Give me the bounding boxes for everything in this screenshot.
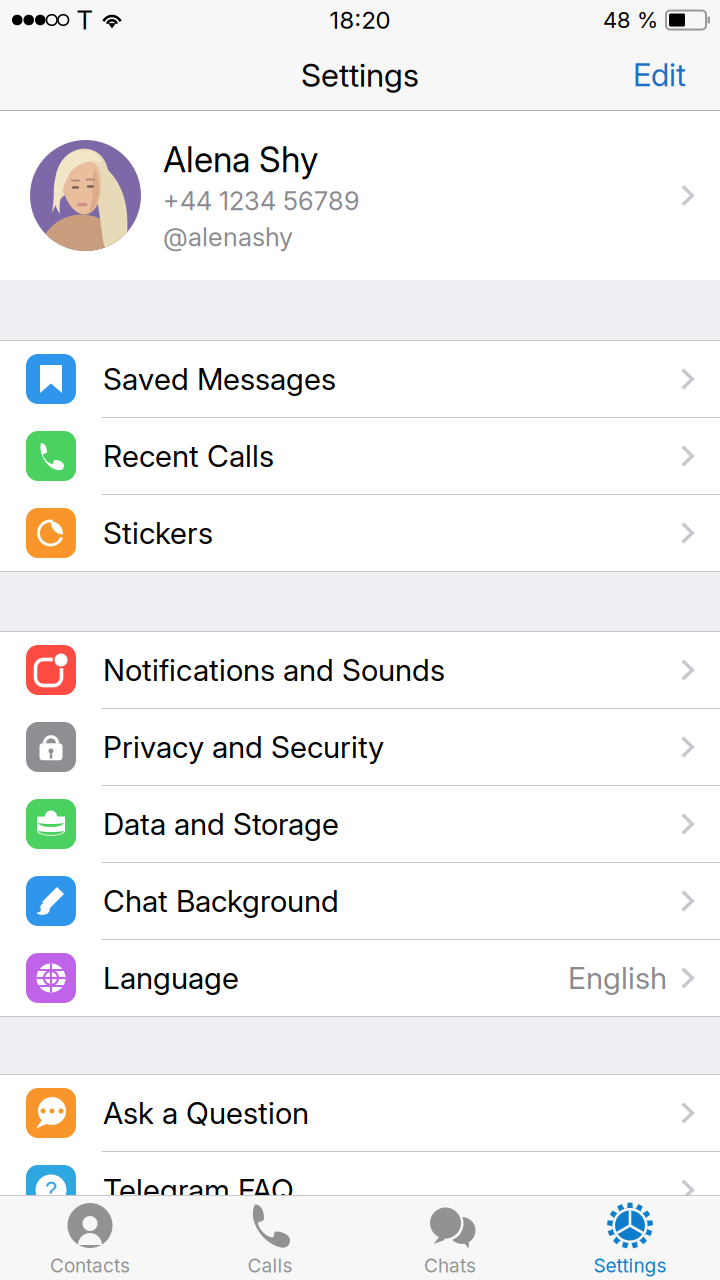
staticText: Alena Shy [163, 139, 318, 181]
staticText: Stickers [103, 515, 213, 551]
button[interactable]: Ask a Question [0, 1075, 720, 1152]
button[interactable]: Data and Storage [0, 786, 720, 863]
staticText: Privacy and Security [103, 729, 384, 765]
staticText: Edit [633, 56, 686, 94]
staticText: Saved Messages [103, 361, 336, 397]
button[interactable]: Recent Calls [0, 418, 720, 495]
button[interactable]: Chats [360, 1196, 540, 1280]
staticText: Chats [424, 1254, 476, 1277]
staticText: 18:20 [329, 5, 390, 34]
button[interactable]: Settings [540, 1196, 720, 1280]
staticText: Chat Background [103, 883, 339, 919]
staticText: Recent Calls [103, 438, 274, 474]
staticText: Data and Storage [103, 806, 339, 842]
button[interactable]: Alena Shy [0, 111, 720, 280]
button[interactable]: Privacy and Security [0, 709, 720, 786]
staticText: 48 % [603, 7, 658, 33]
staticText: Settings [593, 1254, 666, 1277]
staticText: English [568, 960, 667, 996]
staticText: Telegram FAQ [103, 1172, 294, 1208]
button[interactable]: Calls [180, 1196, 360, 1280]
button[interactable]: ? [0, 1152, 720, 1229]
staticText: @alenashy [163, 221, 293, 252]
staticText: T [76, 4, 93, 36]
staticText: Settings [301, 56, 419, 94]
staticText: +44 1234 56789 [163, 186, 360, 216]
staticText: Calls [247, 1254, 292, 1277]
staticText: ? [45, 1175, 57, 1204]
staticText: Ask a Question [103, 1095, 309, 1131]
staticText: Privacy Policy [103, 1249, 293, 1280]
button[interactable]: Contacts [0, 1196, 180, 1280]
button[interactable]: Notifications and Sounds [0, 632, 720, 709]
button[interactable]: Edit [633, 56, 720, 94]
staticText: Contacts [50, 1254, 130, 1277]
staticText: Language [103, 960, 239, 996]
button[interactable]: Stickers [0, 495, 720, 572]
button[interactable]: Privacy Policy [0, 1229, 720, 1280]
button[interactable]: Saved Messages [0, 341, 720, 418]
button[interactable]: Chat Background [0, 863, 720, 940]
button[interactable]: Language [0, 940, 720, 1017]
staticText: Notifications and Sounds [103, 652, 445, 688]
